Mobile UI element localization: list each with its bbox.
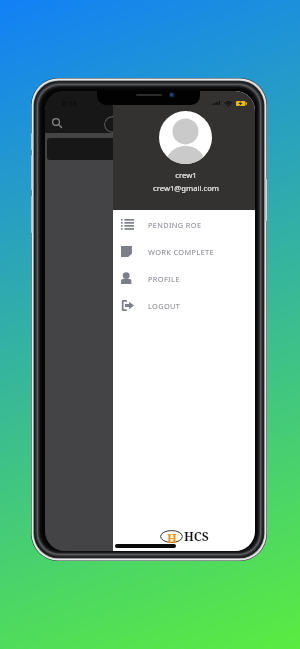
button[interactable]: LOGOUT [113, 292, 255, 319]
button[interactable]: PENDING ROE [113, 211, 255, 238]
button[interactable]: Search [52, 118, 62, 128]
button[interactable] [47, 138, 227, 160]
staticText: HCS [184, 528, 209, 544]
staticText: crew1@gmail.com [115, 183, 255, 193]
other: Button [31, 155, 33, 190]
staticText: WORK COMPLETE [148, 247, 214, 257]
staticText: LOGOUT [148, 301, 181, 311]
button[interactable]: Account [104, 116, 121, 133]
staticText: 8:16 [62, 98, 77, 108]
staticText: PROFILE [148, 274, 180, 284]
staticText: H [167, 530, 177, 543]
staticText: crew1 [115, 170, 255, 181]
other: Button [31, 196, 33, 233]
button[interactable]: PROFILE [113, 265, 255, 292]
other: Button [31, 133, 33, 150]
other: Button [265, 179, 267, 221]
staticText: PENDING ROE [148, 220, 202, 230]
button[interactable]: WORK COMPLETE [113, 238, 255, 265]
